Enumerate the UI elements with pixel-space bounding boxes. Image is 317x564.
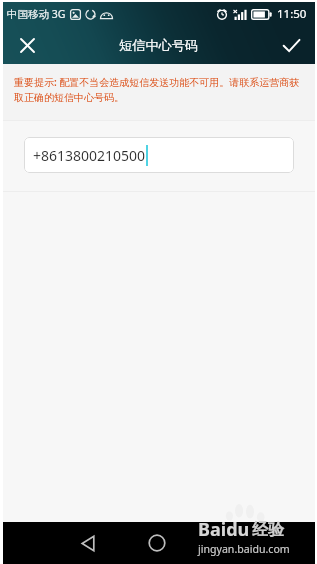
staticText: +8613800210500 (33, 146, 146, 165)
button[interactable]: Back (66, 522, 110, 564)
button[interactable]: Home (135, 522, 179, 564)
staticText: 重要提示: 配置不当会造成短信发送功能不可用。请联系运营商获取正确的短信中心号码… (14, 75, 301, 104)
staticText: 经验 (252, 520, 284, 540)
staticText: 中国移动 3G (7, 7, 66, 21)
button[interactable]: +8613800210500 (24, 137, 294, 173)
button[interactable]: Close (3, 26, 51, 64)
staticText: jingyan.baidu.com (198, 542, 290, 556)
staticText: 11:50 (277, 6, 307, 22)
button[interactable]: Confirm (267, 26, 315, 64)
staticText: Baidu (198, 517, 250, 542)
staticText: 短信中心号码 (119, 37, 199, 54)
